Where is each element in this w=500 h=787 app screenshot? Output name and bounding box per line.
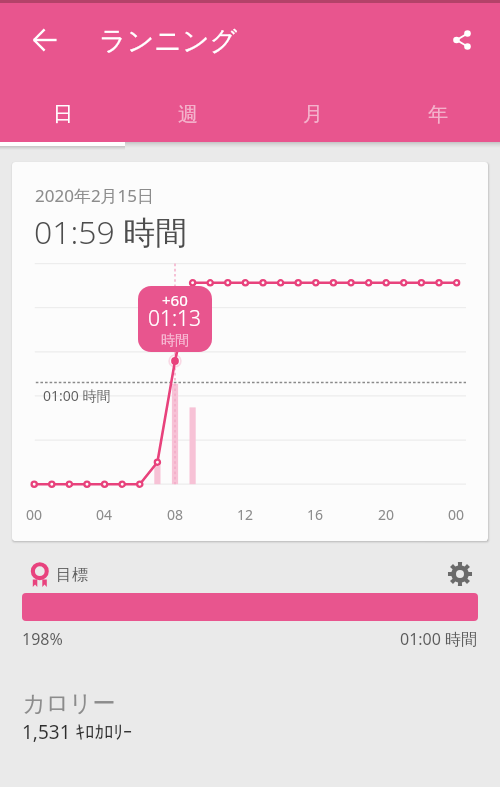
button[interactable]: 月 [250,90,375,138]
staticText: 00 [26,505,43,524]
staticText: 20 [378,505,395,524]
staticText: 08 [167,505,184,524]
button[interactable]: 週 [125,90,250,138]
staticText: 日 [53,102,73,127]
button[interactable]: 年 [375,90,500,138]
staticText: 198% [22,628,63,650]
staticText: +60 [162,290,188,310]
staticText: 12 [237,505,254,524]
button[interactable]: Settings [440,554,480,594]
staticText: ランニング [99,24,238,58]
staticText: 週 [178,102,198,127]
staticText: 目標 [56,565,88,585]
button[interactable]: Back [17,12,73,68]
staticText: 1,531 ｷﾛｶﾛﾘｰ [22,719,133,745]
staticText: 2020年2月15日 [35,184,155,207]
staticText: 01:13 [148,304,202,333]
button[interactable]: Share [434,12,490,68]
button[interactable]: 目標 [22,554,89,588]
staticText: カロリー [22,689,116,718]
staticText: 01:00 時間 [43,386,111,405]
staticText: 04 [96,505,113,524]
staticText: 01:00 時間 [400,628,478,650]
staticText: 年 [428,102,448,127]
staticText: 時間 [161,332,189,350]
staticText: 01:59 時間 [34,210,188,254]
staticText: 月 [303,102,323,127]
button[interactable]: 日 [0,90,125,138]
staticText: 00 [448,505,465,524]
staticText: 16 [307,505,324,524]
